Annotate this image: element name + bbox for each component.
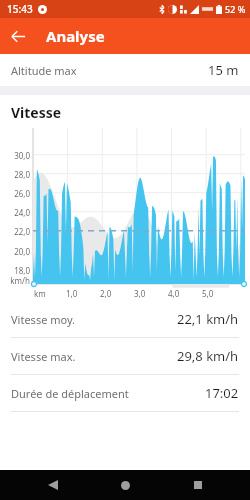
staticText: Vitesse moy. bbox=[11, 312, 76, 327]
button[interactable]: Altitude max bbox=[0, 54, 250, 86]
button[interactable]: Vitesse moy. bbox=[0, 301, 250, 338]
staticText: 3,0 bbox=[134, 288, 146, 299]
staticText: Analyse bbox=[46, 26, 105, 46]
button[interactable]: Recents bbox=[178, 470, 218, 500]
button[interactable]: Back bbox=[0, 18, 36, 54]
staticText: 22,0 bbox=[0, 226, 30, 237]
staticText: Altitude max bbox=[11, 63, 77, 78]
staticText: 20,0 bbox=[0, 246, 30, 257]
staticText: 17:02 bbox=[205, 384, 239, 402]
staticText: km/h bbox=[0, 275, 30, 286]
staticText: 2,0 bbox=[100, 288, 112, 299]
staticText: 5,0 bbox=[202, 288, 214, 299]
staticText: 24,0 bbox=[0, 207, 30, 218]
staticText: 4,0 bbox=[168, 288, 180, 299]
staticText: 15:43 bbox=[7, 2, 33, 16]
staticText: km bbox=[34, 288, 46, 299]
staticText: Vitesse max. bbox=[11, 349, 76, 364]
button[interactable]: Home bbox=[105, 470, 145, 500]
staticText: 30,0 bbox=[0, 150, 30, 161]
staticText: 1,0 bbox=[66, 288, 78, 299]
staticText: 22,1 km/h bbox=[177, 310, 239, 328]
staticText: 52 % bbox=[225, 3, 246, 15]
button[interactable]: Durée de déplacement bbox=[0, 375, 250, 412]
staticText: 29,8 km/h bbox=[177, 347, 239, 365]
staticText: Durée de déplacement bbox=[11, 386, 129, 401]
button[interactable]: Back bbox=[33, 470, 73, 500]
staticText: 18,0 bbox=[0, 265, 30, 276]
staticText: Vitesse bbox=[11, 103, 62, 122]
staticText: 28,0 bbox=[0, 169, 30, 180]
staticText: 26,0 bbox=[0, 188, 30, 199]
staticText: 15 m bbox=[208, 61, 239, 79]
button[interactable]: Vitesse max. bbox=[0, 338, 250, 375]
